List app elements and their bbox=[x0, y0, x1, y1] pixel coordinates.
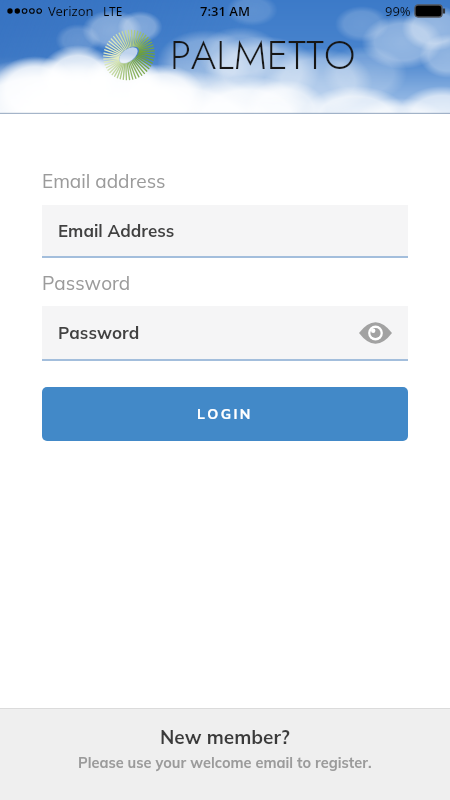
staticText: Password bbox=[58, 322, 140, 343]
staticText: 7:31 AM bbox=[200, 2, 251, 20]
staticText: PALMETTO bbox=[170, 26, 356, 84]
staticText: Password bbox=[42, 271, 131, 295]
button[interactable]: Password bbox=[42, 306, 408, 361]
staticText: Verizon bbox=[48, 2, 94, 20]
staticText: LTE bbox=[103, 3, 123, 19]
staticText: Please use your welcome email to registe… bbox=[78, 753, 372, 771]
button[interactable]: New member? bbox=[0, 708, 450, 800]
button[interactable] bbox=[359, 321, 392, 345]
staticText: New member? bbox=[160, 725, 290, 749]
staticText: Email address bbox=[42, 169, 166, 193]
button[interactable]: Email Address bbox=[42, 205, 408, 258]
staticText: Email Address bbox=[58, 220, 175, 241]
staticText: 99% bbox=[385, 2, 411, 20]
button[interactable]: LOGIN bbox=[42, 387, 408, 441]
staticText: LOGIN bbox=[197, 405, 253, 423]
